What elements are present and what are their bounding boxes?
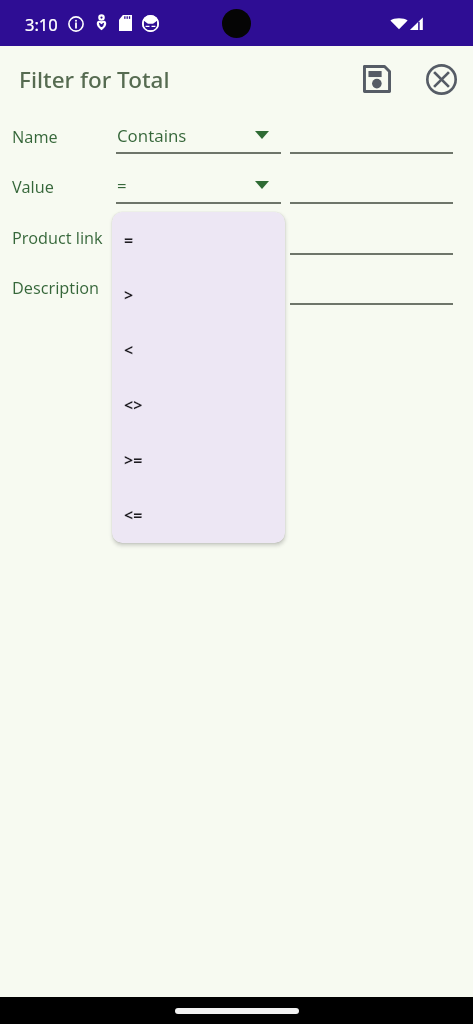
button[interactable]: Close: [417, 55, 465, 103]
staticText: =: [124, 229, 134, 251]
button[interactable]: >: [112, 267, 285, 322]
staticText: <=: [124, 504, 143, 526]
staticText: Filter for Total: [19, 64, 170, 95]
staticText: Contains: [117, 124, 187, 147]
button[interactable]: <=: [112, 487, 285, 542]
button[interactable]: Name operator: [116, 119, 281, 154]
staticText: 3:10: [25, 13, 58, 35]
button[interactable]: Description operator: [116, 270, 281, 305]
staticText: Value: [12, 176, 54, 198]
button[interactable]: =: [112, 212, 285, 267]
staticText: >=: [124, 449, 143, 471]
button[interactable]: Name value: [290, 119, 453, 154]
button[interactable]: Product link value: [290, 220, 453, 255]
staticText: Description: [12, 277, 100, 299]
button[interactable]: <>: [112, 377, 285, 432]
button[interactable]: Description value: [290, 270, 453, 305]
button[interactable]: >=: [112, 432, 285, 487]
staticText: Name: [12, 126, 58, 148]
button[interactable]: <: [112, 322, 285, 377]
button[interactable]: Value value: [290, 169, 453, 204]
staticText: <>: [124, 394, 143, 416]
staticText: =: [117, 174, 127, 197]
staticText: Product link: [12, 227, 103, 249]
staticText: >: [124, 284, 134, 306]
staticText: <: [124, 339, 134, 361]
button[interactable]: Value operator: [116, 169, 281, 204]
button[interactable]: Save: [353, 55, 401, 103]
button[interactable]: Product link operator: [116, 220, 281, 255]
